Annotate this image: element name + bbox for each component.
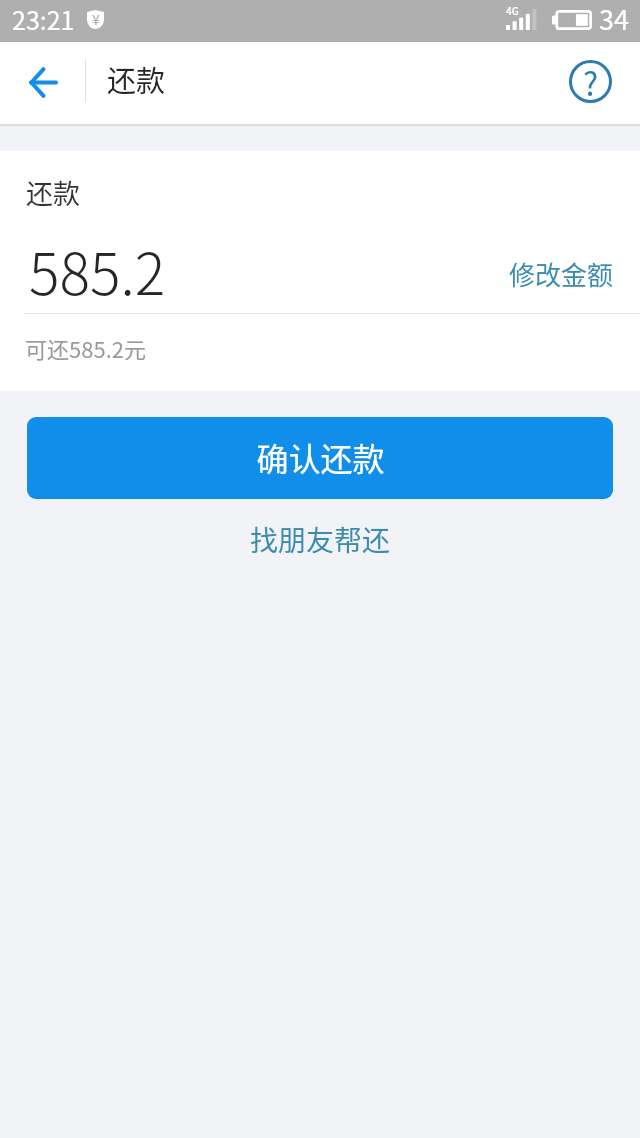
button[interactable]: 确认还款 [27, 417, 613, 499]
staticText: 还款 [107, 58, 166, 100]
staticText: 修改金额 [509, 255, 614, 293]
staticText: 585.2 [29, 229, 166, 312]
button[interactable]: Back [0, 42, 85, 126]
staticText: ? [583, 59, 599, 102]
button[interactable]: Help [541, 42, 640, 126]
staticText: 34 [599, 0, 629, 38]
staticText: 确认还款 [256, 434, 385, 480]
button[interactable]: 修改金额 [497, 243, 626, 305]
button[interactable]: 找朋友帮还 [230, 513, 411, 566]
staticText: 找朋友帮还 [250, 519, 391, 560]
staticText: ¥ [92, 9, 100, 28]
staticText: 还款 [26, 173, 80, 212]
staticText: 23:21 [12, 1, 75, 37]
staticText: 4G [506, 3, 519, 17]
staticText: 可还585.2元 [25, 332, 146, 364]
